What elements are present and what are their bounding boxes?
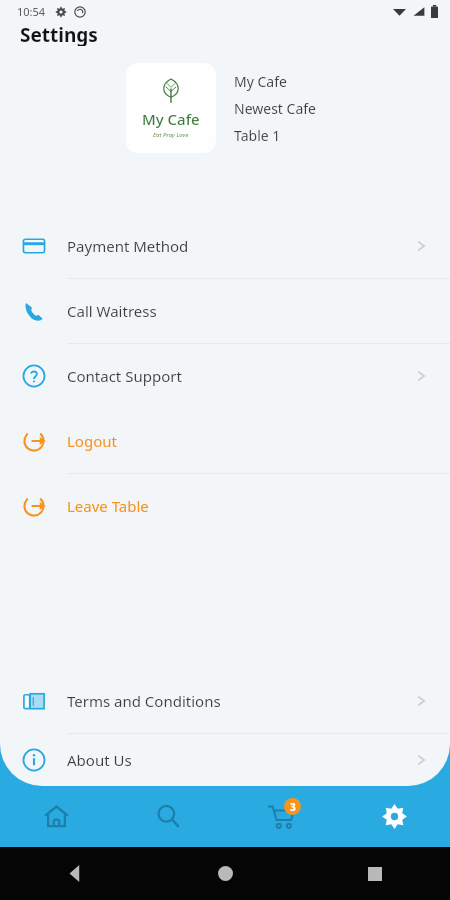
staticText: Leave Table	[67, 496, 149, 516]
button[interactable]: Call Waitress	[0, 279, 450, 343]
staticText: My Cafe	[142, 109, 200, 129]
staticText: Call Waitress	[67, 301, 157, 321]
button[interactable]: Payment Method	[0, 214, 450, 278]
button[interactable]: Contact Support	[0, 344, 450, 408]
button[interactable]: Logout	[0, 409, 450, 473]
staticText: Payment Method	[67, 236, 189, 256]
staticText: 10:54	[17, 4, 46, 19]
staticText: About Us	[67, 750, 132, 770]
button[interactable]: Settings	[369, 791, 419, 841]
button[interactable]: Back	[67, 865, 84, 882]
staticText: Logout	[67, 431, 117, 451]
button[interactable]: About Us	[0, 734, 450, 786]
button[interactable]: Cart	[256, 791, 306, 841]
staticText: 3	[290, 800, 296, 814]
staticText: Eat Pray Love	[153, 131, 189, 139]
staticText: Newest Cafe	[234, 99, 316, 118]
button[interactable]: Home	[31, 791, 81, 841]
button[interactable]: Home	[218, 866, 233, 881]
staticText: Table 1	[234, 126, 281, 145]
staticText: Contact Support	[67, 366, 182, 386]
button[interactable]: Search	[143, 791, 193, 841]
button[interactable]: Leave Table	[0, 474, 450, 538]
button[interactable]: Terms and Conditions	[0, 669, 450, 733]
staticText: Terms and Conditions	[67, 691, 221, 711]
staticText: Settings	[20, 22, 98, 46]
staticText: My Cafe	[234, 72, 287, 91]
